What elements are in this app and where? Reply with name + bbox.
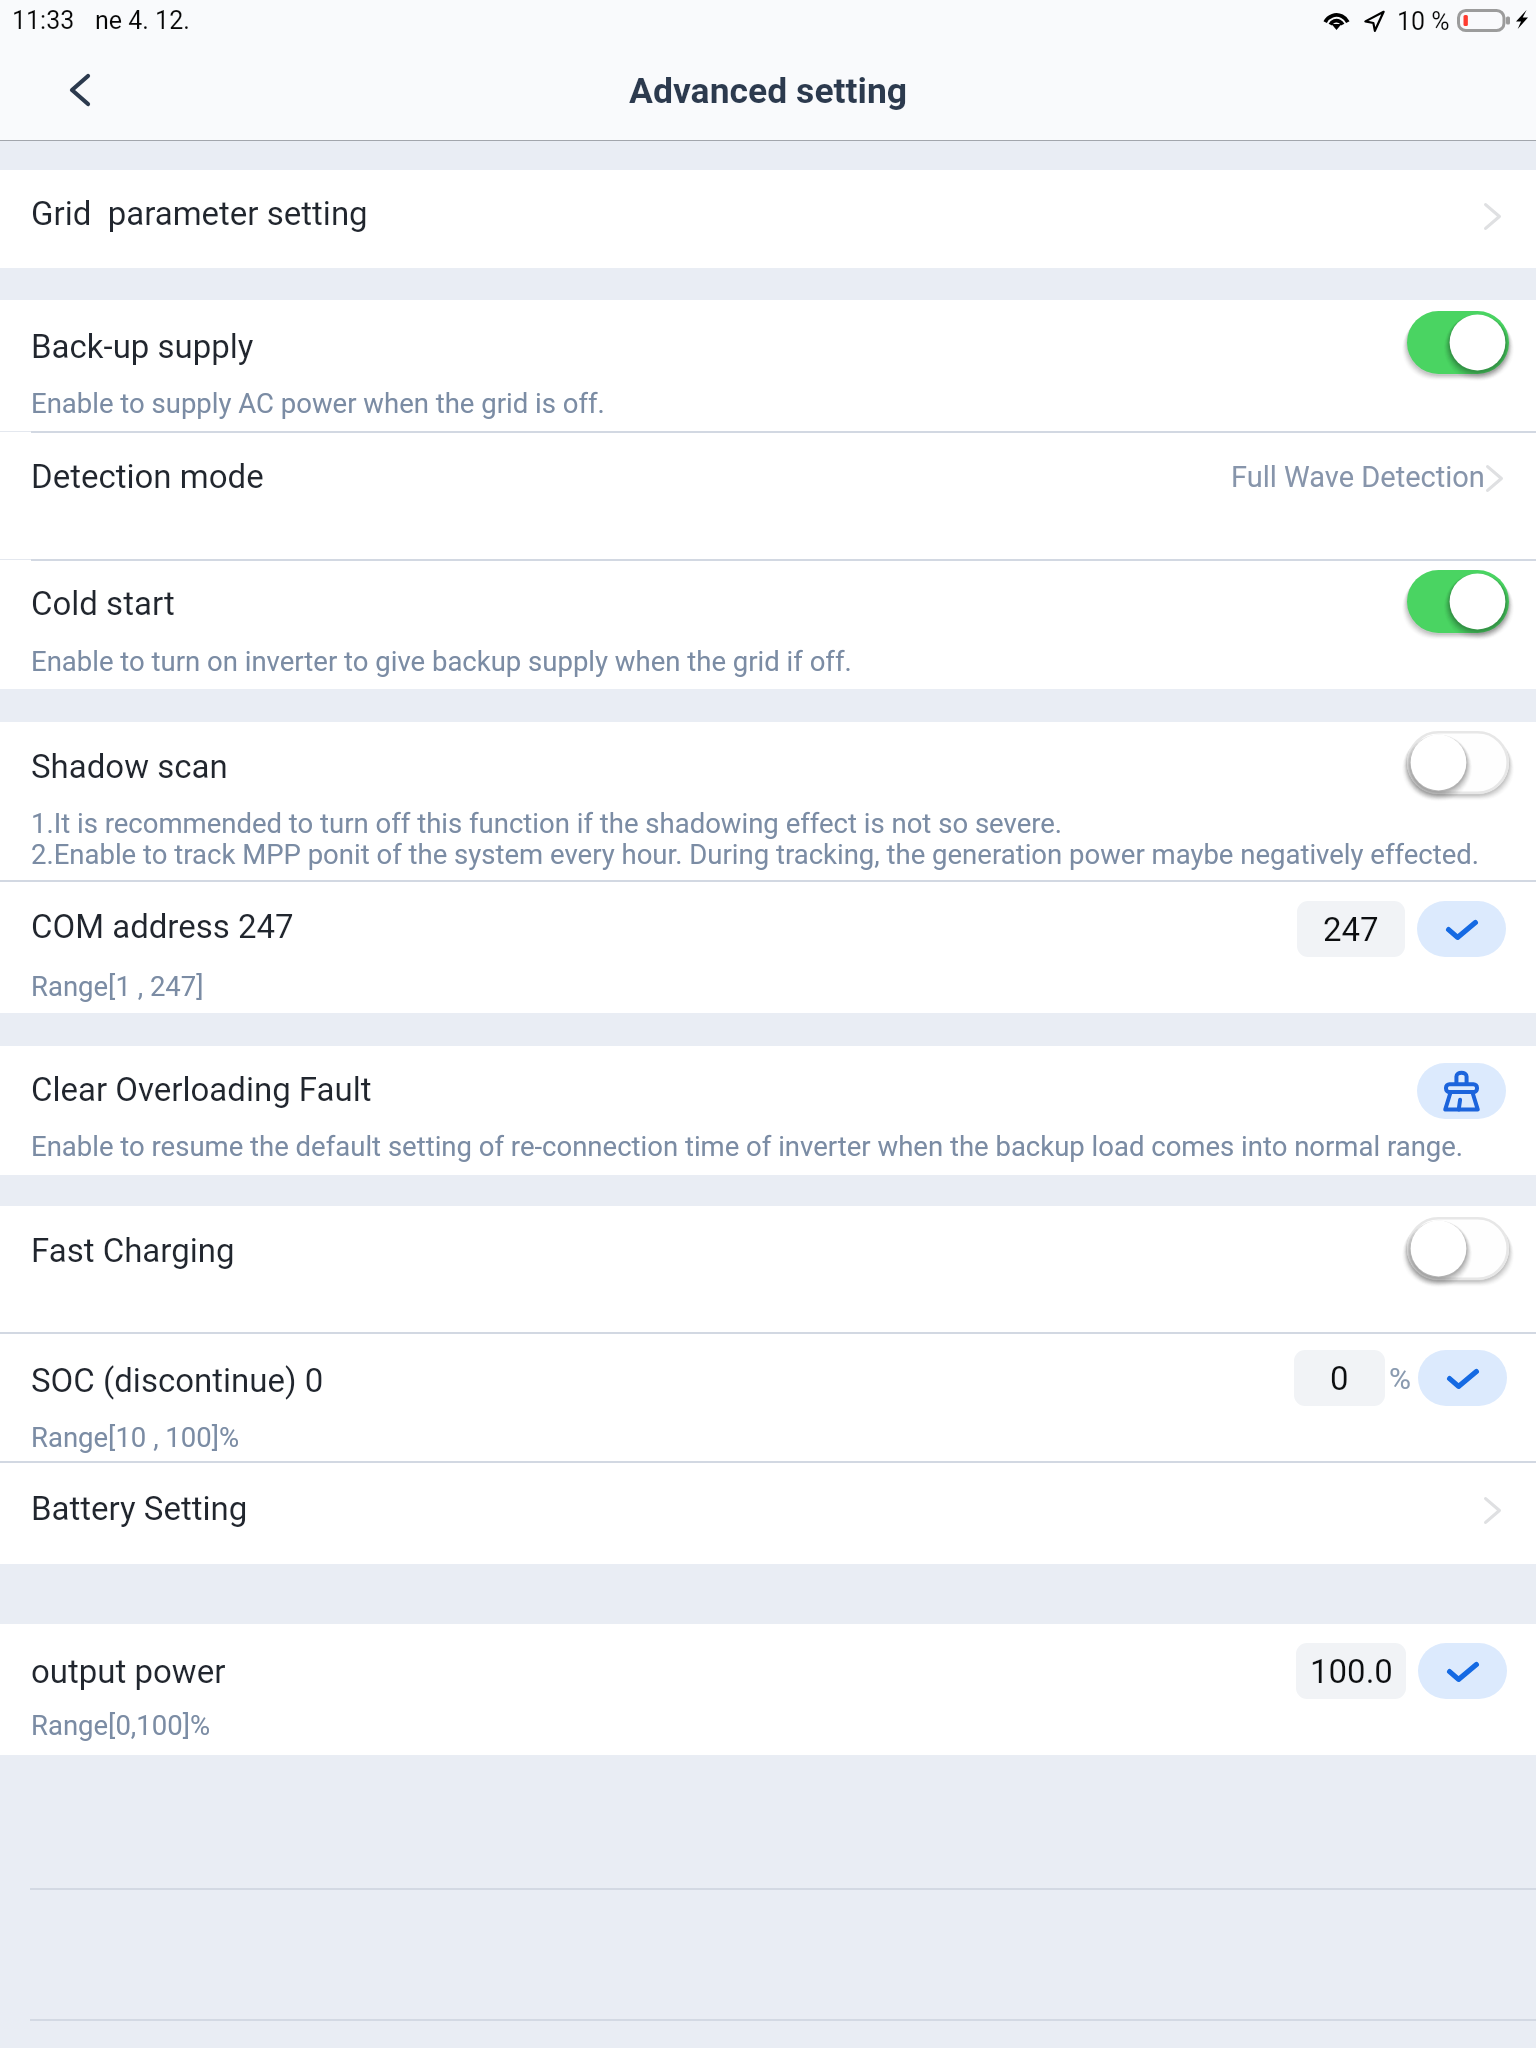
button[interactable]: Fast Charging — [0, 1206, 1536, 1332]
button[interactable]: Switch off — [1407, 1217, 1509, 1280]
staticText: Back-up supply — [31, 327, 254, 366]
button[interactable]: Back-up supply — [0, 300, 1536, 431]
staticText: Advanced setting — [629, 70, 908, 112]
button[interactable]: Switch off — [1407, 731, 1509, 794]
staticText: COM address 247 — [31, 907, 294, 946]
staticText: SOC (discontinue) 0 — [31, 1361, 324, 1400]
staticText: Enable to turn on inverter to give backu… — [31, 645, 852, 677]
staticText: Grid parameter setting — [31, 194, 368, 233]
staticText: 10 % — [1397, 7, 1450, 36]
button[interactable]: output power — [0, 1624, 1536, 1755]
staticText: 0 — [1330, 1359, 1349, 1398]
staticText: 100.0 — [1310, 1652, 1393, 1691]
button[interactable]: Detection mode — [0, 433, 1536, 559]
staticText: Shadow scan — [31, 747, 228, 786]
staticText: 11:33 — [12, 6, 75, 35]
button[interactable]: Switch on — [1407, 570, 1509, 633]
staticText: Battery Setting — [31, 1489, 248, 1528]
staticText: Enable to resume the default setting of … — [31, 1130, 1464, 1162]
staticText: Range[10 , 100]% — [31, 1421, 240, 1453]
button[interactable]: Confirm — [1418, 1643, 1507, 1699]
staticText: 247 — [1323, 910, 1379, 949]
staticText: 1.It is recommended to turn off this fun… — [31, 807, 1480, 871]
button[interactable]: Confirm — [1418, 1350, 1507, 1406]
button[interactable]: Confirm — [1417, 901, 1506, 957]
staticText: Clear Overloading Fault — [31, 1070, 372, 1109]
staticText: Enable to supply AC power when the grid … — [31, 387, 605, 419]
staticText: Range[1 , 247] — [31, 970, 204, 1002]
button[interactable]: Shadow scan — [0, 722, 1536, 880]
staticText: Fast Charging — [31, 1231, 235, 1270]
button[interactable]: 100.0 — [1296, 1643, 1406, 1699]
button[interactable]: Cold start — [0, 561, 1536, 689]
button[interactable]: 0 — [1294, 1350, 1385, 1406]
button[interactable]: Back — [70, 56, 154, 140]
staticText: Detection mode — [31, 457, 264, 496]
staticText: ne 4. 12. — [95, 6, 190, 35]
button[interactable]: Battery Setting — [0, 1463, 1536, 1564]
button[interactable]: SOC (discontinue) 0 — [0, 1334, 1536, 1461]
staticText: Cold start — [31, 584, 175, 623]
button[interactable]: Clear Overloading Fault — [0, 1046, 1536, 1175]
staticText: % — [1389, 1361, 1410, 1396]
button[interactable]: 247 — [1297, 901, 1405, 957]
staticText: Range[0,100]% — [31, 1709, 211, 1741]
staticText: Full Wave Detection — [1231, 460, 1485, 494]
button[interactable]: Grid parameter setting — [0, 170, 1536, 268]
button[interactable]: Switch on — [1407, 311, 1509, 374]
button[interactable]: Clear overloading fault — [1417, 1063, 1506, 1119]
staticText: output power — [31, 1652, 226, 1691]
button[interactable]: COM address 247 — [0, 882, 1536, 1013]
